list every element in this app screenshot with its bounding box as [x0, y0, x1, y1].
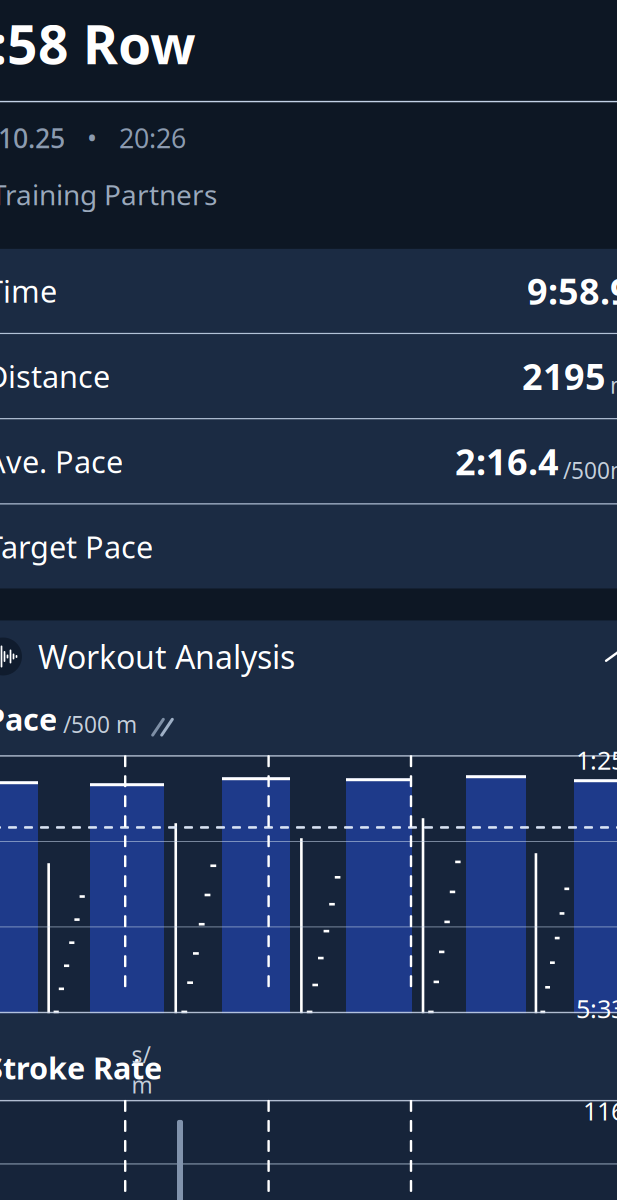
- staticText: m: [610, 370, 617, 400]
- staticText: Stroke Rate: [0, 1047, 162, 1088]
- staticText: 2:16.4: [455, 437, 559, 485]
- button[interactable]: Target Pace: [0, 504, 617, 588]
- button[interactable]: Distance: [0, 334, 617, 418]
- staticText: 116: [583, 1094, 617, 1127]
- staticText: s/m: [131, 1009, 152, 1100]
- staticText: 1:25: [576, 743, 617, 777]
- staticText: 9:58 Row: [0, 8, 196, 79]
- staticText: 14.10.25: [0, 120, 65, 156]
- button[interactable]: Ave. Pace: [0, 419, 617, 503]
- staticText: 20:26: [119, 120, 186, 156]
- button[interactable]: Time: [0, 249, 617, 333]
- staticText: Target Pace: [0, 526, 153, 567]
- staticText: 2195: [522, 352, 606, 400]
- button[interactable]: Training Partners: [0, 170, 217, 219]
- staticText: /500 m: [57, 709, 137, 739]
- button[interactable]: Workout Analysis: [0, 620, 617, 692]
- staticText: /500m: [563, 455, 617, 485]
- staticText: Ave. Pace: [0, 441, 123, 482]
- staticText: Time: [0, 270, 57, 311]
- staticText: Workout Analysis: [38, 635, 295, 678]
- staticText: 9:58.9: [527, 267, 617, 315]
- staticText: Training Partners: [0, 176, 217, 213]
- staticText: Pace: [0, 698, 57, 739]
- staticText: Distance: [0, 356, 110, 396]
- staticText: 5:33: [576, 992, 617, 1025]
- staticText: •: [87, 120, 97, 156]
